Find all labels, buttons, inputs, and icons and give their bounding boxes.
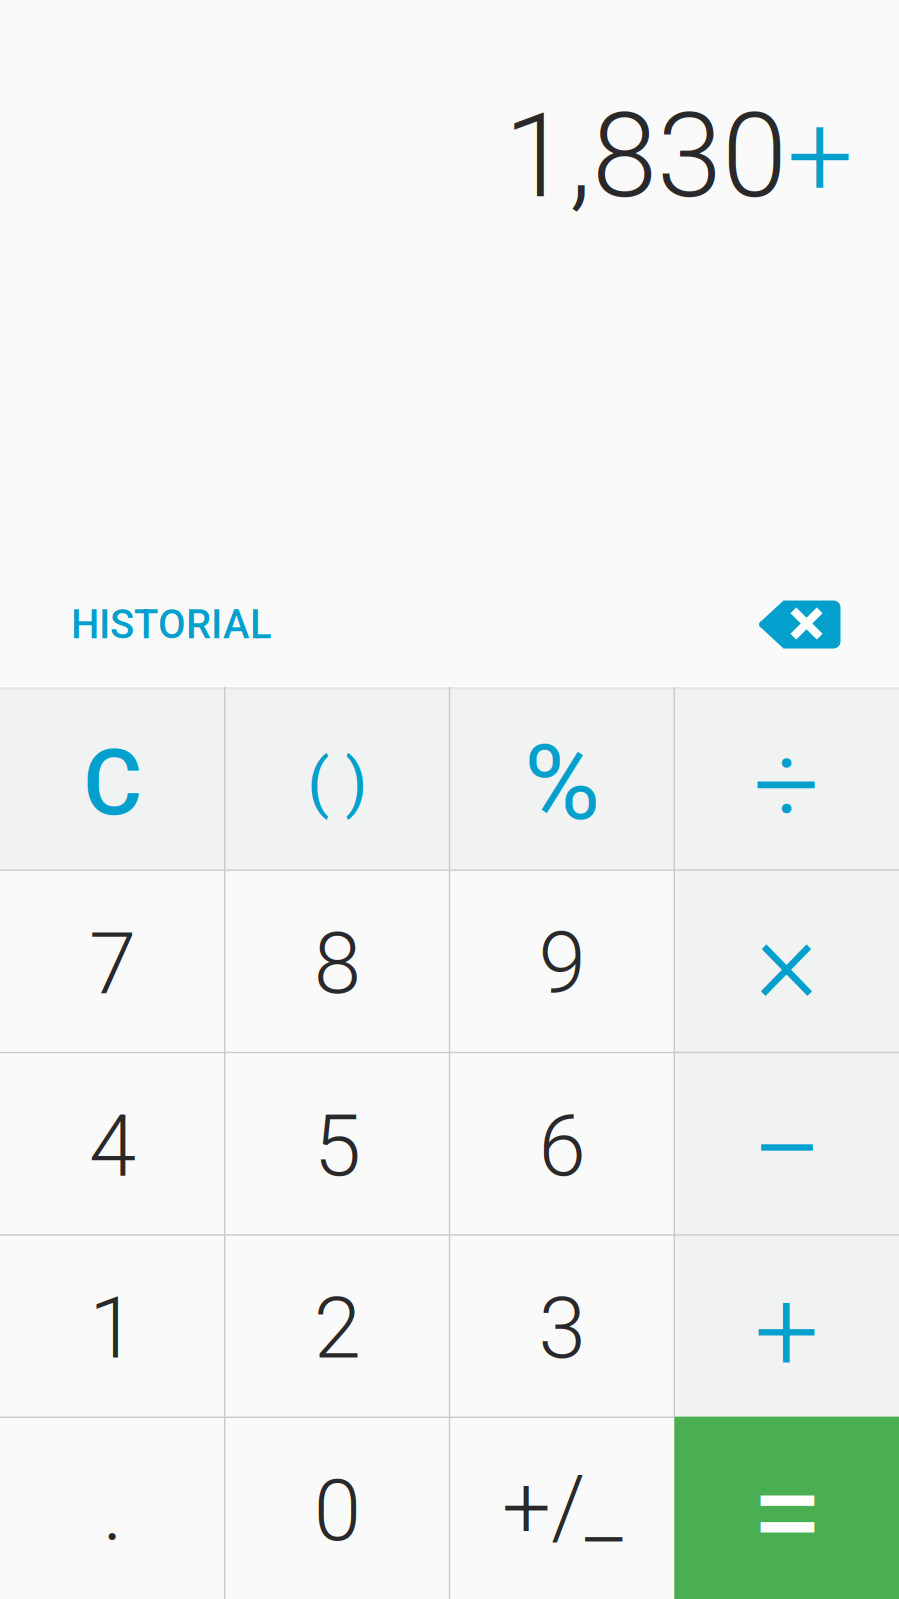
staticText: 4 (89, 1097, 136, 1195)
button[interactable]: 8 (225, 869, 450, 1052)
staticText: 1 (89, 1280, 136, 1377)
staticText: 1,830 (504, 89, 787, 223)
button[interactable]: C (0, 687, 225, 869)
staticText: 7 (89, 915, 136, 1012)
button[interactable]: = (674, 1417, 899, 1599)
staticText: 8 (314, 915, 361, 1012)
staticText: = (751, 1438, 823, 1589)
staticText: + (754, 1266, 819, 1397)
staticText: C (83, 731, 142, 835)
staticText: 2 (314, 1280, 361, 1377)
button[interactable]: ( ) (225, 687, 450, 869)
button[interactable]: 7 (0, 869, 225, 1052)
staticText: × (755, 892, 818, 1030)
staticText: % (524, 724, 600, 843)
button[interactable]: 6 (449, 1052, 674, 1234)
button[interactable]: . (0, 1417, 225, 1599)
button[interactable]: ÷ (674, 687, 899, 869)
staticText: ÷ (753, 718, 820, 852)
button[interactable]: 2 (225, 1234, 450, 1417)
staticText: . (102, 1462, 122, 1559)
button[interactable]: − (674, 1052, 899, 1234)
staticText: + (787, 89, 853, 223)
button[interactable]: 5 (225, 1052, 450, 1234)
staticText: ( ) (307, 747, 367, 820)
button[interactable]: HISTORIAL (71, 562, 272, 687)
button[interactable]: 9 (449, 869, 674, 1052)
button[interactable]: % (449, 687, 674, 869)
button[interactable]: +/_ (449, 1417, 674, 1599)
staticText: 5 (314, 1097, 361, 1195)
staticText: − (751, 1078, 823, 1222)
staticText: 3 (538, 1280, 585, 1377)
button[interactable]: 3 (449, 1234, 674, 1417)
button[interactable]: × (674, 869, 899, 1052)
staticText: 6 (538, 1097, 585, 1195)
button[interactable]: + (674, 1234, 899, 1417)
button[interactable]: 0 (225, 1417, 450, 1599)
button[interactable]: Delete (739, 562, 859, 687)
staticText: 9 (538, 915, 585, 1012)
button[interactable]: 4 (0, 1052, 225, 1234)
staticText: HISTORIAL (71, 602, 272, 647)
staticText: +/_ (502, 1458, 622, 1557)
staticText: 0 (314, 1462, 361, 1559)
button[interactable]: 1 (0, 1234, 225, 1417)
